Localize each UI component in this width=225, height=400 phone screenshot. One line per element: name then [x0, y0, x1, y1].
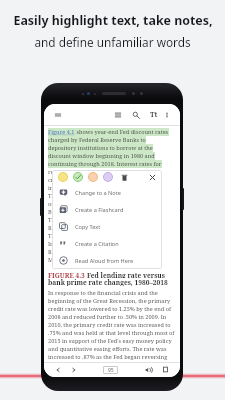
button[interactable]: Delete highlight [120, 173, 129, 182]
staticText: discount window beginning in 1980 and [48, 152, 155, 160]
staticText: credit rate was lowered to 1.25% by the … [48, 305, 171, 313]
button[interactable]: More options [163, 111, 171, 119]
staticText: Rates moved sharply after 2008. [48, 224, 134, 232]
staticText: of the economy and the money supply. [48, 200, 151, 208]
staticText: The Fed adjusts it periodically. [48, 216, 129, 224]
staticText: Institutions adjusted their terms. [48, 240, 136, 248]
staticText: 2008 and reduced further to .50% in 2009… [48, 313, 167, 321]
button[interactable]: Navigation menu [53, 110, 63, 120]
staticText: 95 [108, 367, 114, 374]
staticText: Copy Text [75, 223, 101, 231]
staticText: Create a Citation [75, 240, 119, 248]
staticText: In response to the financial crisis and … [48, 289, 158, 297]
button[interactable]: Create a Citation [52, 235, 162, 252]
button[interactable]: Highlight colour [73, 172, 83, 182]
staticText: Figure 4.1 [48, 128, 75, 136]
button[interactable]: 95 [103, 366, 118, 374]
button[interactable]: Text settings [149, 110, 159, 120]
staticText: continuing through 2018. Interest rates … [48, 160, 162, 168]
staticText: bank prime rate changes, 1980–2018 [48, 278, 168, 286]
staticText: 2015 in support of the Fed's easy money … [48, 337, 172, 345]
staticText: Easily highlight text, take notes, [13, 12, 213, 29]
button[interactable]: Highlight colour [103, 172, 113, 182]
staticText: The discount rate reflects the condition [48, 192, 153, 200]
staticText: shows year-end Fed discount rates [75, 128, 169, 136]
staticText: .75% and was held at that level through … [48, 329, 175, 337]
staticText: and define unfamiliar words [34, 34, 191, 50]
button[interactable]: Close [148, 173, 157, 182]
button[interactable]: Change to a Note [52, 184, 162, 201]
staticText: Rates remained low for years. [48, 248, 128, 256]
button[interactable]: Copy Text [52, 218, 162, 235]
button[interactable]: Highlight colour [88, 172, 98, 182]
staticText: institutions are charged when borrowing. [48, 184, 160, 192]
staticText: beginning of the Great Recession, the pr… [48, 297, 171, 305]
staticText: charged by Federal Reserve Banks to [48, 136, 146, 144]
staticText: Read Aloud from Here [75, 257, 134, 265]
staticText: depository institutions to borrow at the [48, 144, 153, 152]
staticText: represent the average rate of the primar… [48, 168, 159, 176]
button[interactable]: Highlight colour [58, 172, 68, 182]
staticText: Change to a Note [75, 189, 121, 197]
button[interactable]: Read Aloud from Here [52, 252, 162, 269]
staticText: FIGURE 4.3 [48, 271, 87, 278]
staticText: increased to .87% as the Fed began rever… [48, 353, 168, 361]
staticText: Markets recovered gradually. [48, 256, 126, 264]
staticText: and quantitative easing efforts. The rat… [48, 345, 167, 353]
staticText: Fed lending rate versus [87, 271, 165, 278]
button[interactable]: Read aloud [143, 365, 153, 375]
button[interactable]: Next page [69, 365, 79, 375]
staticText: 2010, the primary credit rate was increa… [48, 321, 171, 329]
staticText: Tt [150, 110, 158, 120]
button[interactable]: Bookmark [161, 365, 170, 374]
staticText: Banks borrow to cover shortfalls. [48, 208, 137, 216]
button[interactable]: Search [131, 110, 141, 120]
staticText: credit over a given period and the rate [48, 176, 151, 184]
button[interactable]: Table of contents [113, 110, 123, 120]
staticText: This affected lending markets. [48, 232, 129, 240]
button[interactable]: Create a Flashcard [52, 201, 162, 218]
button[interactable]: Previous page [53, 365, 63, 375]
staticText: Create a Flashcard [75, 206, 124, 214]
